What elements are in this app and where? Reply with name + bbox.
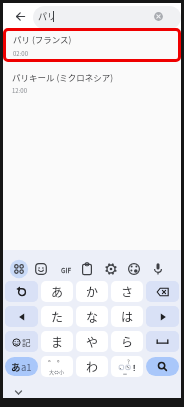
staticText: た (51, 308, 64, 325)
staticText: 記 (22, 336, 31, 348)
staticText: あ (11, 360, 21, 374)
button[interactable]: 記 (5, 331, 38, 352)
button[interactable] (3, 62, 181, 96)
button[interactable]: ? (111, 356, 143, 377)
staticText: 02:00 (13, 49, 28, 58)
staticText: は (121, 308, 134, 325)
button[interactable] (80, 262, 94, 276)
staticText: パリ (フランス) (13, 33, 72, 45)
button[interactable]: や (76, 331, 108, 352)
button[interactable]: か (76, 281, 108, 302)
button[interactable] (34, 262, 48, 276)
button[interactable]: あ (5, 357, 38, 376)
staticText: a1 (21, 360, 32, 374)
button[interactable]: た (41, 306, 73, 327)
button[interactable] (146, 281, 179, 302)
staticText: パリ (38, 10, 57, 23)
staticText: か (86, 283, 99, 300)
button[interactable] (15, 11, 26, 22)
button[interactable]: わ (76, 356, 108, 377)
button[interactable] (33, 6, 181, 29)
button[interactable] (5, 281, 38, 302)
staticText: や (86, 333, 99, 350)
staticText: ? (127, 357, 130, 366)
staticText: あ (51, 283, 64, 300)
staticText: パリキール (ミクロネシア) (12, 71, 114, 83)
button[interactable]: は (111, 306, 143, 327)
staticText: 大⇔小 (49, 368, 65, 375)
button[interactable]: さ (111, 281, 143, 302)
button[interactable] (5, 306, 38, 327)
button[interactable] (146, 306, 179, 327)
button[interactable] (104, 262, 118, 276)
button[interactable] (146, 331, 179, 352)
staticText: ら (121, 333, 134, 350)
staticText: な (86, 308, 99, 325)
button[interactable] (3, 28, 181, 62)
button[interactable] (127, 262, 141, 276)
button[interactable] (9, 259, 29, 279)
staticText: ま (51, 333, 64, 350)
button[interactable] (3, 3, 181, 28)
staticText: GIF (61, 265, 71, 274)
button[interactable] (146, 357, 179, 376)
button[interactable]: ま (41, 331, 73, 352)
button[interactable] (151, 262, 165, 276)
button[interactable]: あ (41, 281, 73, 302)
button[interactable]: ら (111, 331, 143, 352)
staticText: ゛゜ (48, 358, 67, 371)
staticText: さ (121, 283, 134, 300)
button[interactable] (11, 385, 26, 400)
button[interactable]: ゛゜ (41, 356, 73, 377)
button[interactable] (150, 8, 167, 25)
staticText: 12:00 (12, 86, 27, 95)
staticText: わ (86, 358, 99, 375)
button[interactable]: な (76, 306, 108, 327)
button[interactable]: GIF (56, 261, 76, 277)
